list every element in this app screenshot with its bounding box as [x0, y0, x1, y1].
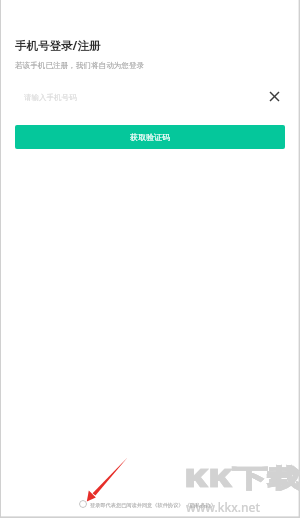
staticText: KK下载 [184, 461, 300, 495]
staticText: 手机号登录/注册 [15, 38, 101, 54]
staticText: 若该手机已注册，我们将自动为您登录 [15, 61, 145, 71]
staticText: 请输入手机号码 [24, 93, 77, 102]
button[interactable]: 请输入手机号码 [0, 86, 300, 108]
staticText: KK下载 [184, 461, 300, 495]
button[interactable]: 获取验证码 [15, 125, 285, 149]
staticText: 登录即代表您已阅读并同意《软件协议》 《隐私条款》 [90, 501, 216, 508]
button[interactable]: 登录即代表您已阅读并同意《软件协议》 《隐私条款》 [79, 500, 216, 508]
staticText: 获取验证码 [130, 132, 170, 142]
staticText: www.kkx.net [186, 499, 261, 515]
button[interactable]: Clear [264, 86, 284, 106]
